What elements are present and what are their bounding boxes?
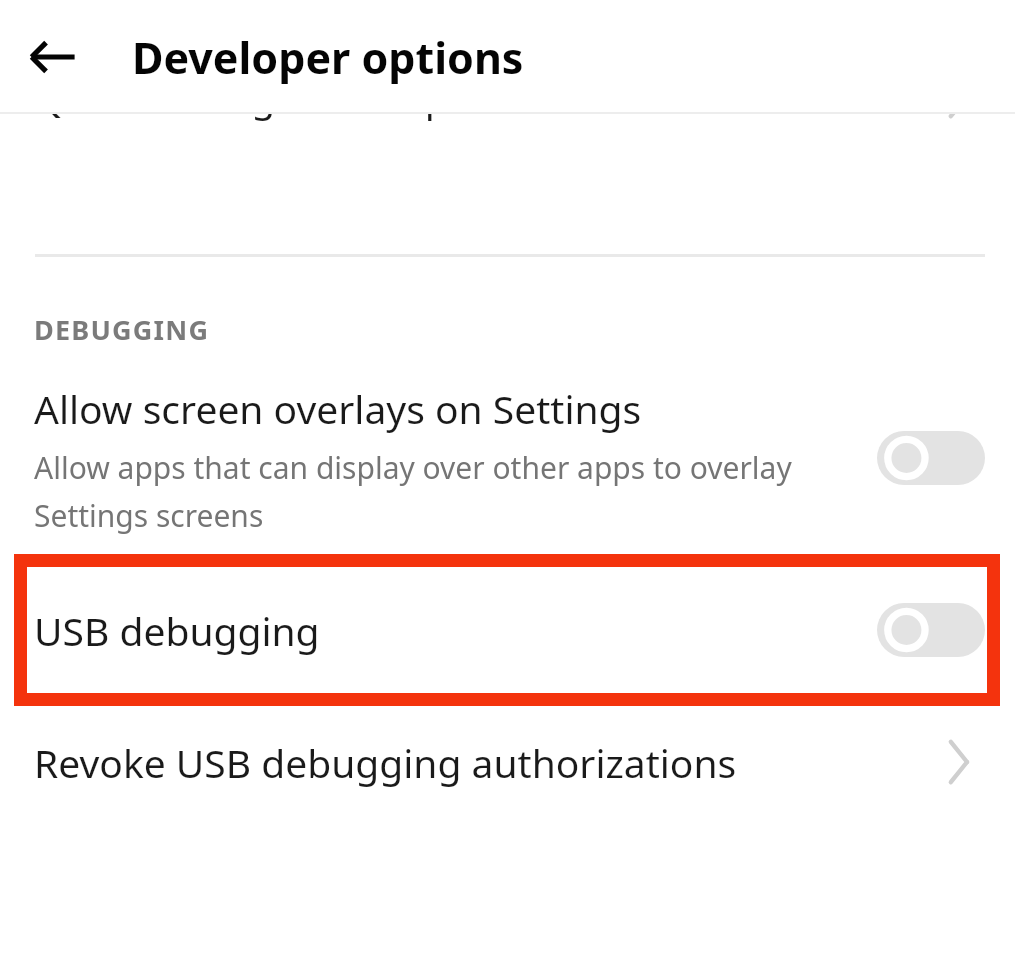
- button[interactable]: Toggle off: [877, 431, 985, 485]
- staticText: Allow apps that can display over other a…: [34, 447, 867, 535]
- button[interactable]: Quick settings developer tiles: [0, 114, 1015, 254]
- staticText: Revoke USB debugging authorizations: [34, 736, 737, 789]
- staticText: USB debugging: [34, 604, 320, 657]
- staticText: Quick settings developer tiles: [34, 114, 572, 123]
- button[interactable]: Revoke USB debugging authorizations: [0, 706, 1015, 818]
- button[interactable]: USB debugging: [0, 554, 1015, 706]
- staticText: Developer options: [132, 28, 524, 87]
- staticText: Allow screen overlays on Settings: [34, 382, 642, 435]
- button[interactable]: Back: [22, 26, 84, 88]
- button[interactable]: Toggle off: [877, 603, 985, 657]
- button[interactable]: Allow screen overlays on Settings: [0, 362, 1015, 554]
- staticText: DEBUGGING: [34, 311, 210, 348]
